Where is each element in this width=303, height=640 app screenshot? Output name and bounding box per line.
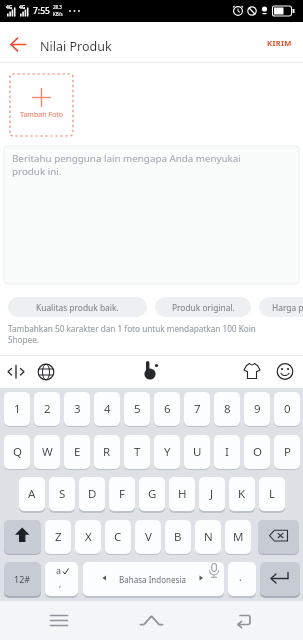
button[interactable] [272, 358, 298, 386]
button[interactable] [260, 562, 300, 596]
staticText: 1 [14, 401, 21, 417]
button[interactable]: J [199, 477, 225, 511]
button[interactable]: N [195, 520, 221, 554]
button[interactable] [10, 74, 73, 136]
button[interactable]: Q [4, 435, 30, 469]
button[interactable]: D [79, 477, 105, 511]
button[interactable] [258, 520, 299, 554]
button[interactable]: 5 [124, 392, 150, 426]
staticText: 0 [284, 401, 291, 417]
staticText: Beritahu pengguna lain mengapa Anda meny… [12, 152, 241, 178]
staticText: D [88, 486, 97, 502]
staticText: 2 [44, 401, 51, 417]
staticText: R [103, 444, 111, 460]
button[interactable]: 7 [184, 392, 210, 426]
button[interactable] [4, 146, 299, 284]
button[interactable]: S [49, 477, 75, 511]
button[interactable] [137, 358, 163, 386]
staticText: , [59, 578, 62, 589]
staticText: a [56, 564, 62, 576]
staticText: K [238, 486, 246, 502]
button[interactable]: X [75, 520, 101, 554]
staticText: G [148, 486, 157, 502]
staticText: Tambahkan 50 karakter dan 1 foto untuk m… [8, 323, 256, 345]
button[interactable]: K [229, 477, 255, 511]
button[interactable]: U [184, 435, 210, 469]
button[interactable]: 0 [274, 392, 300, 426]
button[interactable]: 8 [214, 392, 240, 426]
button[interactable]: H [169, 477, 195, 511]
button[interactable]: Produk original. [155, 297, 251, 317]
staticText: 3 [74, 401, 81, 417]
button[interactable] [2, 28, 36, 58]
staticText: W [42, 444, 53, 460]
button[interactable]: 9 [244, 392, 270, 426]
button[interactable] [212, 603, 278, 639]
button[interactable] [26, 603, 92, 639]
button[interactable]: T [124, 435, 150, 469]
button[interactable] [45, 562, 78, 596]
staticText: 28.3 [53, 4, 62, 10]
staticText: U [193, 444, 202, 460]
button[interactable] [83, 562, 224, 596]
button[interactable]: V [135, 520, 161, 554]
button[interactable]: Y [154, 435, 180, 469]
button[interactable]: R [94, 435, 120, 469]
button[interactable]: I [214, 435, 240, 469]
button[interactable]: B [165, 520, 191, 554]
button[interactable]: Kualitas produk baik. [8, 297, 147, 317]
button[interactable] [239, 358, 265, 386]
staticText: S [59, 486, 66, 502]
button[interactable]: 2 [34, 392, 60, 426]
staticText: Z [55, 529, 62, 545]
staticText: V [145, 529, 152, 545]
staticText: Nilai Produk [40, 38, 112, 55]
staticText: L [269, 486, 276, 502]
staticText: E [74, 444, 81, 460]
staticText: P [284, 444, 291, 460]
staticText: Q [13, 444, 22, 460]
staticText: Y [164, 444, 171, 460]
staticText: A [28, 486, 36, 502]
button[interactable]: F [109, 477, 135, 511]
button[interactable] [34, 358, 60, 386]
button[interactable]: O [244, 435, 270, 469]
button[interactable]: W [34, 435, 60, 469]
staticText: X [85, 529, 92, 545]
button[interactable] [4, 520, 41, 554]
button[interactable]: Z [45, 520, 71, 554]
button[interactable]: 12# [4, 562, 41, 596]
staticText: C [114, 529, 122, 545]
button[interactable]: P [274, 435, 300, 469]
staticText: M [233, 529, 244, 545]
staticText: 5 [134, 401, 141, 417]
button[interactable]: G [139, 477, 165, 511]
staticText: . [239, 570, 242, 584]
button[interactable]: 6 [154, 392, 180, 426]
button[interactable]: 1 [4, 392, 30, 426]
button[interactable] [4, 358, 30, 386]
staticText: KIRIM [267, 38, 292, 48]
button[interactable]: L [259, 477, 285, 511]
button[interactable]: A [19, 477, 45, 511]
staticText: J [210, 486, 214, 502]
staticText: Tambah Foto [10, 110, 73, 120]
staticText: 4G [19, 4, 26, 11]
button[interactable]: M [225, 520, 251, 554]
staticText: T [134, 444, 141, 460]
button[interactable] [118, 603, 184, 639]
button[interactable]: KIRIM [258, 30, 300, 56]
button[interactable]: C [105, 520, 131, 554]
staticText: Bahasa Indonesia [82, 574, 223, 585]
staticText: H [178, 486, 187, 502]
staticText: 12# [14, 573, 31, 585]
staticText: 9 [254, 401, 261, 417]
staticText: 7:55 [33, 5, 50, 17]
button[interactable]: 3 [64, 392, 90, 426]
staticText: F [119, 486, 125, 502]
button[interactable]: 4 [94, 392, 120, 426]
staticText: Harga pa [272, 302, 303, 313]
button[interactable]: E [64, 435, 90, 469]
button[interactable]: Harga pa [259, 297, 303, 317]
button[interactable] [228, 562, 256, 596]
